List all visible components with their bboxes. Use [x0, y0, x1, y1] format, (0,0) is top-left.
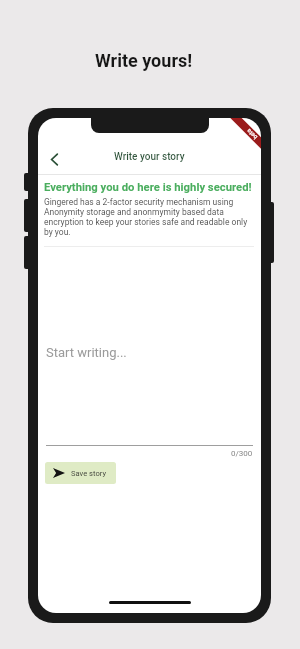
- button[interactable]: Back: [38, 142, 71, 176]
- staticText: beta: [245, 128, 258, 141]
- staticText: Everything you do here is highly secured…: [44, 181, 252, 194]
- staticText: Write your story: [114, 151, 185, 163]
- button[interactable]: Save story: [45, 462, 116, 484]
- staticText: Start writing...: [46, 345, 127, 360]
- staticText: Gingered has a 2-factor security mechani…: [44, 197, 248, 237]
- staticText: Write yours!: [95, 50, 193, 71]
- staticText: Save story: [71, 469, 107, 478]
- staticText: 0/300: [231, 449, 253, 458]
